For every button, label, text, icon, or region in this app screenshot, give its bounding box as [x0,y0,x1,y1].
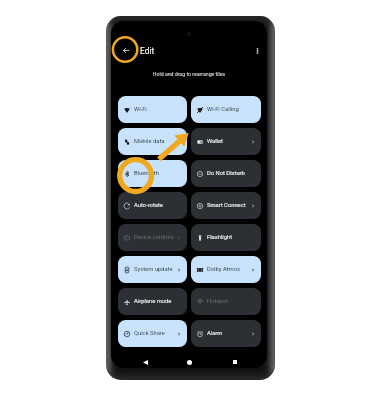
staticText: Wi-Fi Calling [207,106,239,113]
staticText: Bluetooth [134,170,159,177]
staticText: Alarm [207,330,223,337]
button[interactable]: More options [246,40,267,62]
button[interactable]: Auto-rotate [118,192,187,219]
button[interactable]: Quick Share [118,320,187,347]
staticText: Wallet [207,138,223,145]
button[interactable]: Bluetooth [118,160,187,187]
button[interactable]: Do Not Disturb [191,160,261,187]
staticText: Hotspot [207,298,228,305]
staticText: Mobile data [134,138,165,145]
staticText: Do Not Disturb [207,170,245,177]
button[interactable]: Airplane mode [118,288,187,315]
button[interactable]: Hotspot [191,288,261,315]
staticText: Dolby Atmos [207,266,240,273]
staticText: Device controls [134,234,174,241]
staticText: Smart Connect [207,202,246,209]
staticText: Flashlight [207,234,233,241]
button[interactable]: Alarm [191,320,261,347]
button[interactable]: Home [180,353,198,368]
button[interactable]: Mobile data [118,128,187,155]
button[interactable]: Device controls [118,224,187,251]
staticText: Auto-rotate [134,202,163,209]
button[interactable]: Back [136,353,154,368]
staticText: Edit [140,46,155,56]
staticText: Airplane mode [134,298,172,305]
button[interactable]: Smart Connect [191,192,261,219]
button[interactable]: System update [118,256,187,283]
staticText: System update [134,266,173,273]
button[interactable]: Recents [226,353,244,368]
staticText: Wi-Fi [134,106,147,113]
button[interactable]: Back [115,39,137,61]
button[interactable]: Wi-Fi Calling [191,96,261,123]
button[interactable]: Wallet [191,128,261,155]
button[interactable]: Wi-Fi [118,96,187,123]
staticText: Hold and drag to rearrange tiles [111,71,267,77]
staticText: Quick Share [134,330,165,337]
button[interactable]: Flashlight [191,224,261,251]
button[interactable]: Dolby Atmos [191,256,261,283]
